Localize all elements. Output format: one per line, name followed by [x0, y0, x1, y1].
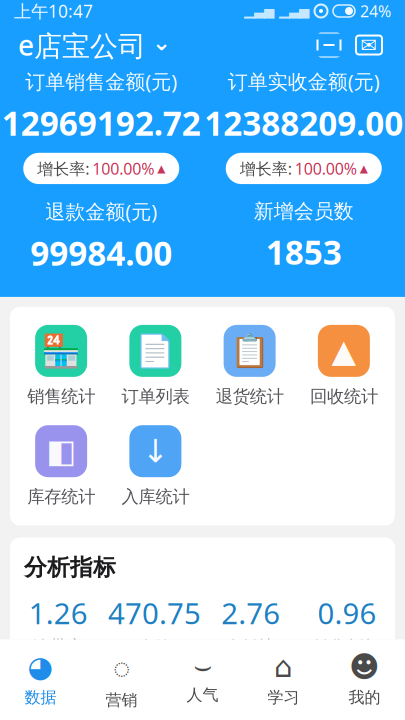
- staticText: 学习: [267, 687, 299, 707]
- staticText: ▲: [157, 162, 165, 174]
- staticText: 📄: [135, 333, 175, 369]
- button[interactable]: ☻: [324, 650, 405, 707]
- staticText: 99984.00: [30, 231, 172, 275]
- staticText: 100.00%: [295, 158, 357, 179]
- staticText: 12388209.00: [204, 101, 403, 145]
- button[interactable]: 📄: [108, 325, 202, 407]
- staticText: 1853: [266, 230, 342, 274]
- staticText: ↓: [142, 433, 169, 469]
- button[interactable]: ◕: [0, 650, 81, 707]
- button[interactable]: ◌: [81, 647, 162, 710]
- staticText: 入库统计: [121, 486, 189, 507]
- staticText: 退货统计: [216, 386, 284, 407]
- staticText: 470.75: [108, 593, 201, 632]
- staticText: ▲: [360, 162, 368, 174]
- button[interactable]: ⌣: [162, 653, 243, 705]
- staticText: 营销: [105, 690, 137, 710]
- staticText: ☻: [349, 650, 380, 683]
- staticText: e店宝公司: [18, 26, 146, 64]
- staticText: 分析指标: [24, 553, 116, 581]
- staticText: 退款金额(元): [45, 198, 157, 225]
- staticText: 库存统计: [27, 486, 95, 507]
- staticText: ◧: [46, 433, 76, 469]
- staticText: ⌄: [152, 30, 171, 55]
- staticText: 增长率:: [37, 158, 89, 179]
- staticText: 0.96: [317, 593, 376, 632]
- staticText: 2.76: [221, 593, 280, 632]
- staticText: ◌: [113, 647, 130, 686]
- staticText: 我的: [348, 687, 380, 707]
- staticText: 回收统计: [310, 386, 378, 407]
- staticText: 12969192.72: [2, 101, 201, 145]
- button[interactable]: ▲: [297, 325, 391, 407]
- staticText: ▁▃▅: [279, 3, 309, 18]
- staticText: ◕: [27, 650, 53, 683]
- button[interactable]: ↓: [108, 425, 202, 507]
- staticText: 增长率:: [240, 158, 292, 179]
- staticText: 连带率: [33, 636, 84, 658]
- staticText: 订单列表: [121, 386, 189, 407]
- staticText: 24%: [360, 0, 391, 22]
- button[interactable]: ⌂: [243, 650, 324, 707]
- staticText: ▁▃▅: [244, 3, 274, 18]
- button[interactable]: 消息: [349, 25, 389, 65]
- staticText: 存销比: [225, 636, 276, 658]
- staticText: ⌣: [193, 653, 212, 681]
- staticText: ✉: [360, 34, 377, 56]
- staticText: 人气: [186, 685, 218, 705]
- staticText: 📋: [230, 333, 270, 369]
- staticText: ⌂: [274, 650, 293, 683]
- staticText: 🏪: [41, 333, 81, 369]
- staticText: 订单实收金额(元): [228, 68, 380, 95]
- staticText: 上午10:47: [14, 0, 93, 22]
- button[interactable]: ◧: [14, 425, 108, 507]
- staticText: 销售折扣: [313, 636, 381, 658]
- button[interactable]: 📋: [202, 325, 297, 407]
- staticText: 新增会员数: [254, 199, 354, 224]
- staticText: 1.26: [29, 593, 88, 632]
- button[interactable]: e店宝公司: [16, 20, 173, 70]
- staticText: 100.00%: [92, 158, 154, 179]
- staticText: 数据: [24, 687, 56, 707]
- staticText: 订单销售金额(元): [25, 68, 177, 95]
- staticText: ▲: [331, 333, 356, 369]
- staticText: 销售统计: [27, 386, 95, 407]
- button[interactable]: 🏪: [14, 325, 108, 407]
- button[interactable]: 扫一扫: [309, 25, 349, 65]
